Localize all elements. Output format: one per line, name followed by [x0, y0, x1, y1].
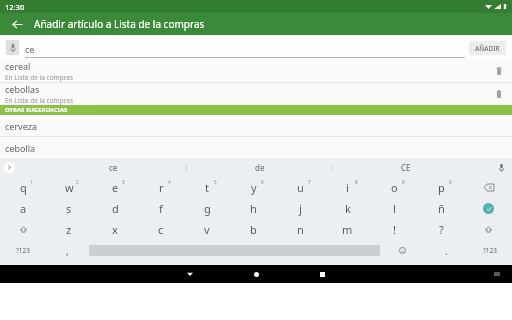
- button[interactable]: r: [138, 177, 184, 198]
- staticText: m: [342, 222, 353, 237]
- staticText: x: [112, 222, 118, 237]
- button[interactable]: a: [0, 198, 46, 219]
- staticText: g: [204, 201, 211, 216]
- button[interactable]: ?: [418, 219, 465, 240]
- button[interactable]: j: [277, 198, 324, 219]
- staticText: z: [66, 222, 72, 237]
- button[interactable]: CE: [333, 158, 478, 177]
- staticText: w: [65, 180, 74, 195]
- button[interactable]: Back: [0, 13, 34, 35]
- button[interactable]: z: [46, 219, 92, 240]
- button[interactable]: h: [230, 198, 277, 219]
- button[interactable]: m: [324, 219, 371, 240]
- staticText: r: [159, 180, 164, 195]
- staticText: CE: [401, 162, 411, 173]
- button[interactable]: t: [184, 177, 230, 198]
- button[interactable]: ce: [40, 158, 186, 177]
- button[interactable]: d: [92, 198, 138, 219]
- staticText: OTRAS SUGERENCIAS: [5, 106, 68, 114]
- staticText: a: [20, 201, 27, 216]
- staticText: 3: [122, 179, 125, 185]
- button[interactable]: n: [277, 219, 324, 240]
- button[interactable]: Voice input: [0, 35, 25, 60]
- staticText: d: [112, 201, 119, 216]
- staticText: 1: [30, 179, 33, 185]
- button[interactable]: p: [418, 177, 465, 198]
- button[interactable]: AÑADIR: [469, 41, 506, 55]
- staticText: 6: [261, 179, 264, 185]
- staticText: 7: [308, 179, 311, 185]
- staticText: o: [391, 180, 398, 195]
- staticText: cereal: [5, 60, 31, 72]
- button[interactable]: !: [371, 219, 418, 240]
- button[interactable]: k: [324, 198, 371, 219]
- button[interactable]: ?123: [468, 240, 512, 261]
- staticText: c: [158, 222, 164, 237]
- button[interactable]: ñ: [418, 198, 465, 219]
- staticText: q: [20, 180, 27, 195]
- button[interactable]: i: [324, 177, 371, 198]
- button[interactable]: Home: [243, 265, 269, 283]
- button[interactable]: Voice typing: [490, 158, 512, 177]
- button[interactable]: Shift: [465, 219, 512, 240]
- staticText: v: [204, 222, 210, 237]
- staticText: 12:30: [5, 2, 25, 12]
- button[interactable]: w: [46, 177, 92, 198]
- staticText: ,: [66, 244, 69, 258]
- button[interactable]: cereal: [0, 60, 512, 82]
- staticText: cebollas: [5, 83, 40, 95]
- button[interactable]: Delete: [486, 60, 512, 82]
- staticText: 9: [402, 179, 405, 185]
- staticText: Añadir artículo a Lista de la compras: [34, 17, 205, 31]
- button[interactable]: de: [187, 158, 332, 177]
- button[interactable]: cebolla: [0, 137, 512, 158]
- staticText: k: [345, 201, 351, 216]
- staticText: AÑADIR: [475, 44, 500, 53]
- staticText: ?123: [483, 246, 497, 255]
- staticText: .: [445, 244, 448, 258]
- button[interactable]: Back: [177, 265, 203, 283]
- button[interactable]: o: [371, 177, 418, 198]
- button[interactable]: Backspace: [465, 177, 512, 198]
- button[interactable]: ,: [45, 240, 89, 261]
- staticText: b: [250, 222, 257, 237]
- staticText: 8: [355, 179, 358, 185]
- button[interactable]: cebollas: [0, 83, 512, 105]
- button[interactable]: q: [0, 177, 46, 198]
- button[interactable]: e: [92, 177, 138, 198]
- staticText: ce: [25, 43, 35, 55]
- staticText: de: [255, 162, 265, 173]
- staticText: 2: [76, 179, 79, 185]
- button[interactable]: ?123: [0, 240, 45, 261]
- button[interactable]: b: [230, 219, 277, 240]
- staticText: t: [205, 180, 209, 195]
- button[interactable]: Delete: [486, 83, 512, 105]
- staticText: f: [159, 201, 163, 216]
- button[interactable]: f: [138, 198, 184, 219]
- staticText: u: [297, 180, 304, 195]
- button[interactable]: Recents: [309, 265, 335, 283]
- button[interactable]: Emoji: [380, 240, 424, 261]
- staticText: 5: [214, 179, 217, 185]
- staticText: !: [393, 222, 396, 237]
- staticText: ?123: [16, 246, 30, 255]
- button[interactable]: Shift: [0, 219, 46, 240]
- button[interactable]: y: [230, 177, 277, 198]
- button[interactable]: .: [424, 240, 468, 261]
- button[interactable]: v: [184, 219, 230, 240]
- staticText: l: [393, 201, 396, 216]
- button[interactable]: More suggestions: [4, 162, 15, 173]
- button[interactable]: g: [184, 198, 230, 219]
- button[interactable]: l: [371, 198, 418, 219]
- staticText: 4: [168, 179, 171, 185]
- button[interactable]: s: [46, 198, 92, 219]
- button[interactable]: cerveza: [0, 115, 512, 136]
- button[interactable]: c: [138, 219, 184, 240]
- button[interactable]: Enter: [465, 198, 512, 219]
- button[interactable]: u: [277, 177, 324, 198]
- staticText: s: [66, 201, 72, 216]
- button[interactable]: x: [92, 219, 138, 240]
- staticText: En Lista de la compras: [5, 96, 74, 105]
- staticText: ñ: [438, 201, 445, 216]
